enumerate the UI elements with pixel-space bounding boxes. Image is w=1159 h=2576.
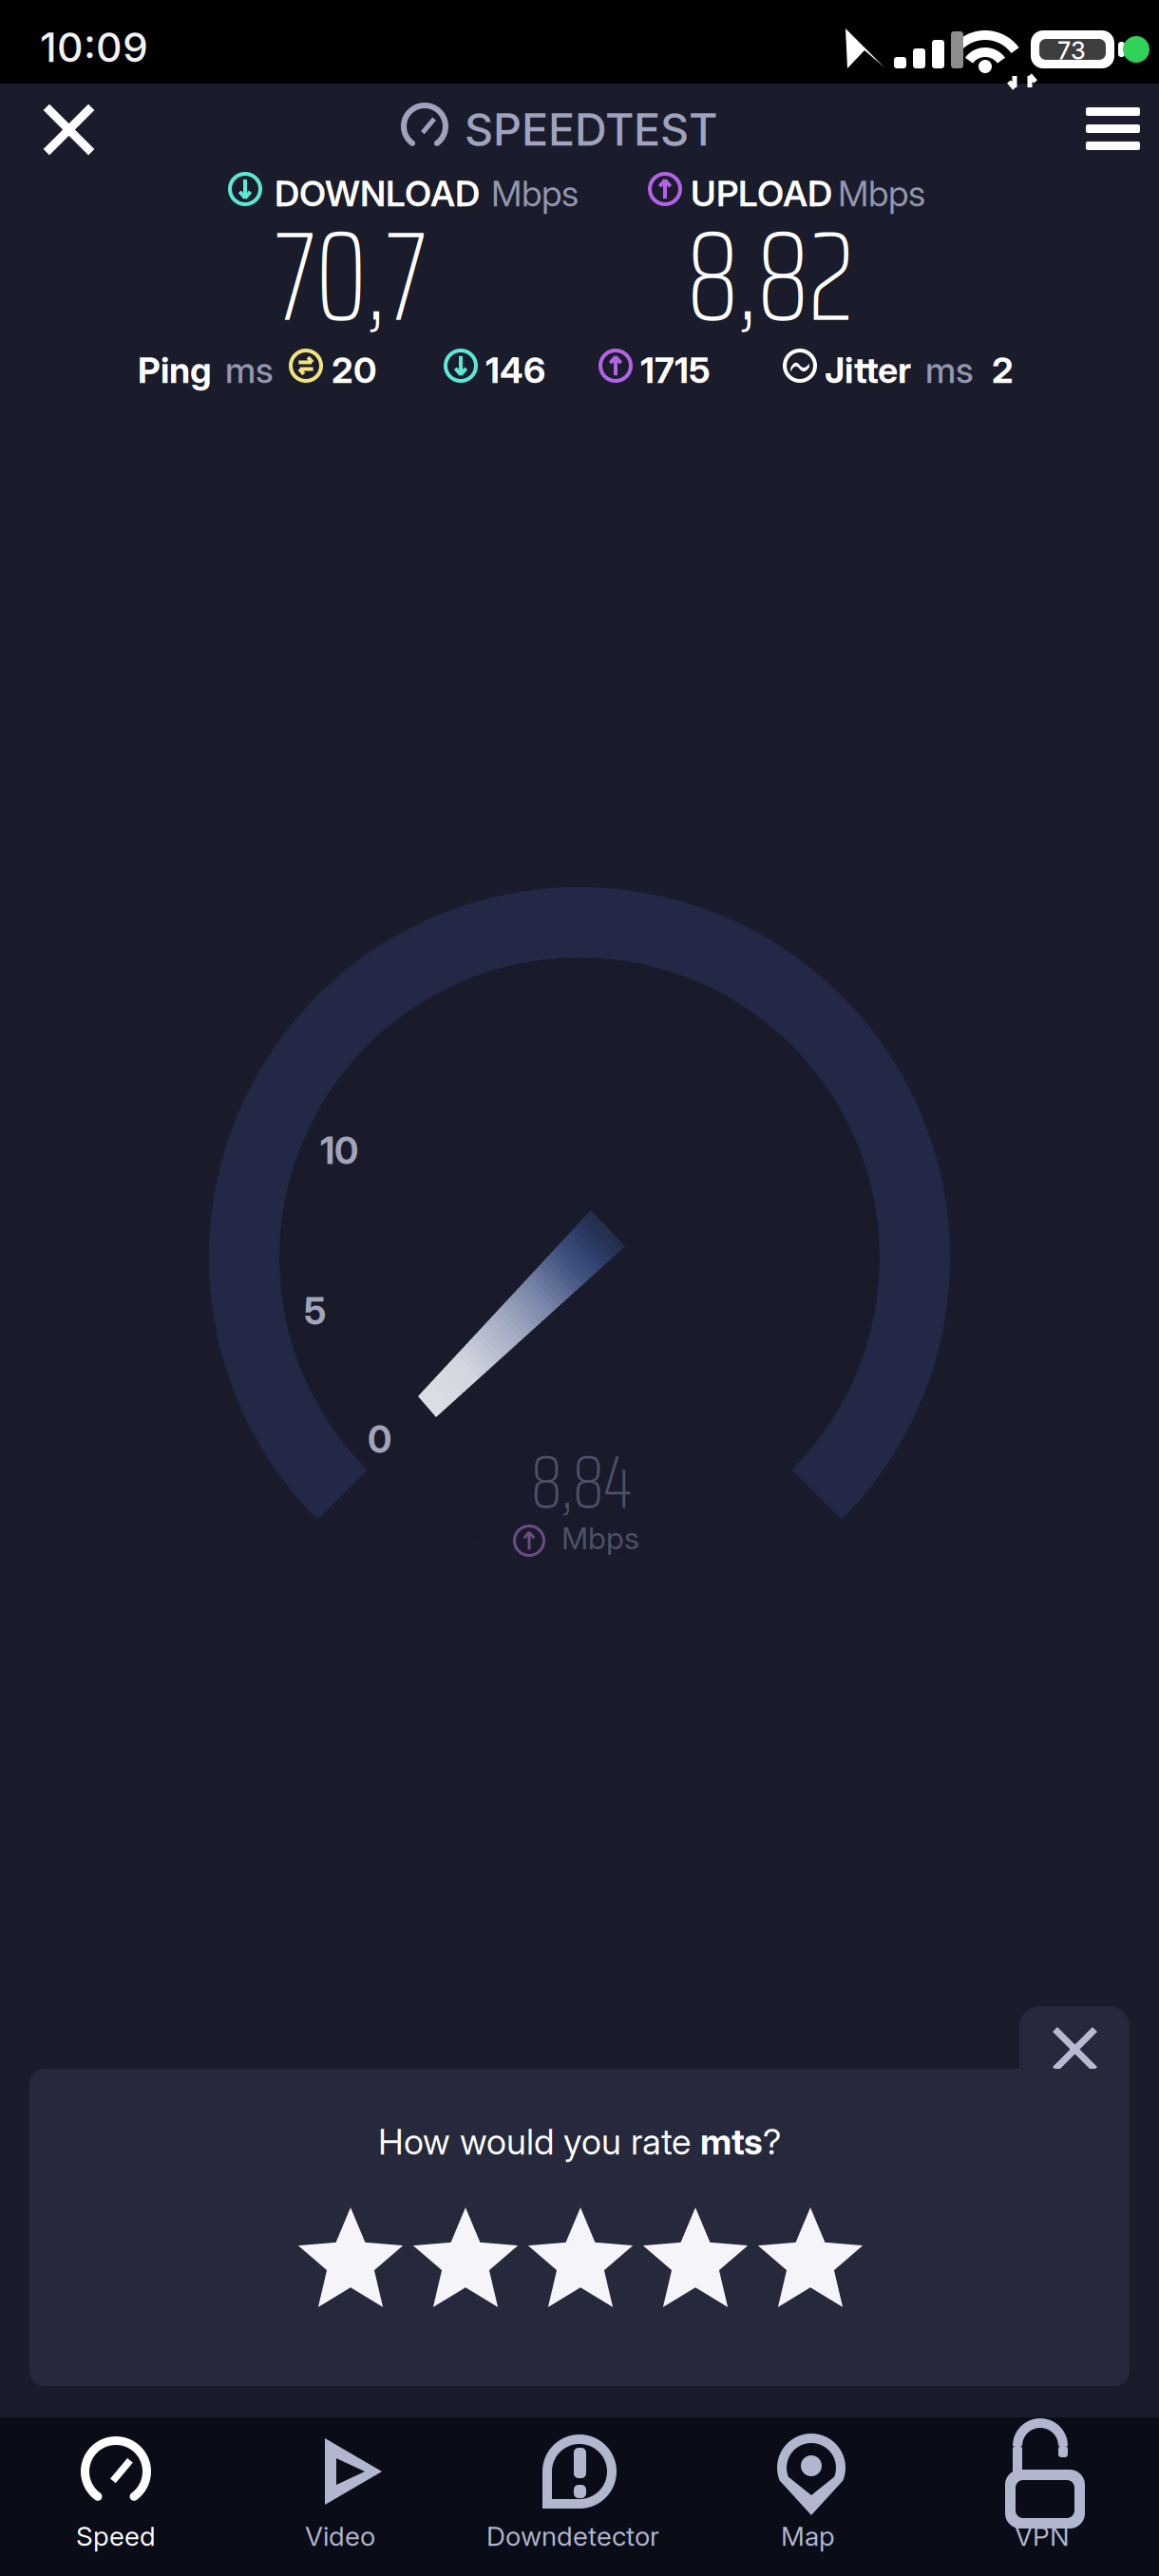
staticText: 1715 [640, 349, 711, 392]
staticText: 73 [1057, 36, 1086, 65]
staticText: 8,82 [687, 178, 854, 375]
staticText: VPN [1015, 2520, 1070, 2552]
staticText: 70,7 [275, 178, 427, 375]
staticText: Mbps [491, 172, 579, 215]
staticText: Jitter [825, 349, 911, 392]
button[interactable]: Close [0, 0, 1159, 2576]
button[interactable]: Rate 2 [0, 0, 1159, 2576]
button[interactable]: Rate 4 [0, 0, 1159, 2576]
staticText: 2 [992, 349, 1014, 392]
staticText: Ping [138, 349, 212, 392]
staticText: Map [781, 2520, 835, 2552]
button[interactable]: Dismiss rating prompt [0, 0, 1159, 2576]
button[interactable]: Rate 5 [0, 0, 1159, 2576]
staticText: 20 [332, 349, 376, 392]
button[interactable]: VPN [0, 0, 1159, 2576]
button[interactable]: Rate 1 [0, 0, 1159, 2576]
staticText: ms [225, 349, 274, 392]
staticText: 0 [368, 1417, 391, 1462]
staticText: Mbps [838, 172, 925, 215]
button[interactable]: Speed [0, 0, 1159, 2576]
staticText: ms [925, 349, 974, 392]
button[interactable]: Rate 3 [0, 0, 1159, 2576]
staticText: SPEEDTEST [465, 103, 717, 156]
staticText: Speed [76, 2520, 156, 2552]
staticText: How would you rate [378, 2120, 700, 2163]
staticText: mts [700, 2120, 763, 2163]
staticText: 5 [304, 1289, 326, 1333]
staticText: DOWNLOAD [275, 172, 480, 215]
staticText: Downdetector [486, 2520, 659, 2552]
staticText: Video [305, 2520, 375, 2552]
staticText: Mbps [561, 1520, 639, 1557]
staticText: 10 [320, 1128, 358, 1173]
staticText: 8,84 [531, 1423, 632, 1540]
button[interactable]: Downdetector [0, 0, 1159, 2576]
button[interactable]: Map [0, 0, 1159, 2576]
staticText: 10:09 [40, 23, 148, 72]
staticText: UPLOAD [691, 172, 832, 215]
staticText: 146 [485, 349, 545, 392]
button[interactable]: Video [0, 0, 1159, 2576]
staticText: ? [763, 2120, 781, 2163]
button[interactable]: Menu [0, 0, 1159, 2576]
